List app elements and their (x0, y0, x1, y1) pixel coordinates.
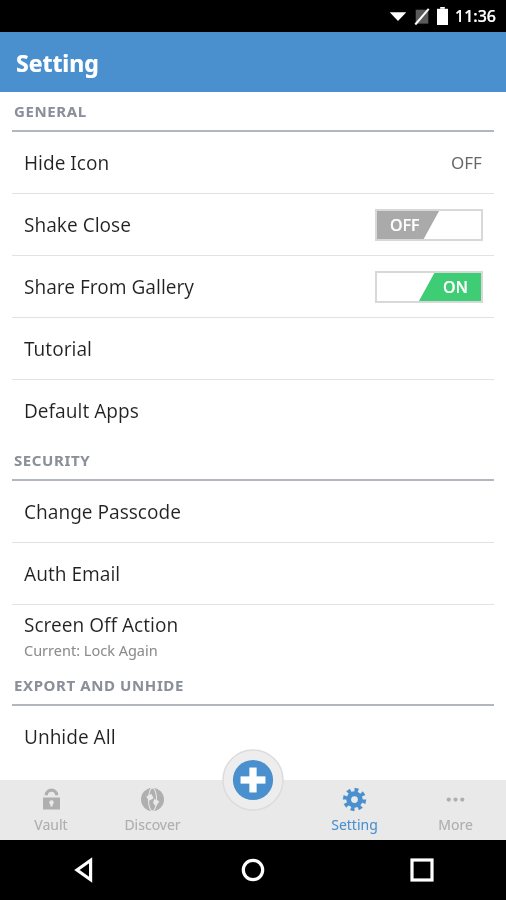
button[interactable]: Default Apps (0, 380, 506, 441)
button[interactable]: Hide Icon (0, 132, 506, 193)
staticText: Unhide All (24, 724, 116, 750)
button[interactable]: Add (208, 750, 298, 810)
button[interactable]: Tutorial (0, 318, 506, 379)
button[interactable]: Screen Off Action (0, 605, 506, 666)
staticText: Screen Off Action (24, 612, 179, 638)
staticText: GENERAL (14, 101, 87, 121)
staticText: Share From Gallery (24, 274, 195, 300)
staticText: Tutorial (24, 336, 93, 362)
staticText: Change Passcode (24, 499, 181, 525)
staticText: Hide Icon (24, 150, 110, 176)
button[interactable]: Change Passcode (0, 481, 506, 542)
button[interactable]: Recents (402, 850, 442, 890)
button[interactable]: Discover (102, 780, 203, 840)
button[interactable]: ON (376, 272, 482, 302)
staticText: Auth Email (24, 561, 121, 587)
staticText: 11:36 (455, 5, 496, 27)
staticText: ON (443, 276, 468, 298)
staticText: SECURITY (14, 450, 91, 470)
button[interactable]: Auth Email (0, 543, 506, 604)
staticText: OFF (451, 151, 482, 174)
staticText: Vault (34, 815, 68, 834)
button[interactable]: Vault (0, 780, 102, 840)
staticText: More (438, 815, 473, 834)
button[interactable]: Unhide All (0, 706, 506, 767)
staticText: Discover (124, 815, 181, 834)
button[interactable]: Share From Gallery (0, 256, 506, 317)
button[interactable]: Home (233, 850, 273, 890)
button[interactable]: Setting (304, 780, 405, 840)
staticText: EXPORT AND UNHIDE (14, 675, 184, 695)
staticText: Setting (16, 47, 99, 78)
staticText: Current: Lock Again (24, 640, 158, 660)
button[interactable]: More (405, 780, 506, 840)
staticText: Setting (331, 815, 378, 834)
staticText: Shake Close (24, 212, 131, 238)
button[interactable]: Back (64, 850, 104, 890)
button[interactable]: OFF (376, 210, 482, 240)
button[interactable]: Shake Close (0, 194, 506, 255)
staticText: Default Apps (24, 398, 139, 424)
staticText: OFF (390, 214, 420, 236)
